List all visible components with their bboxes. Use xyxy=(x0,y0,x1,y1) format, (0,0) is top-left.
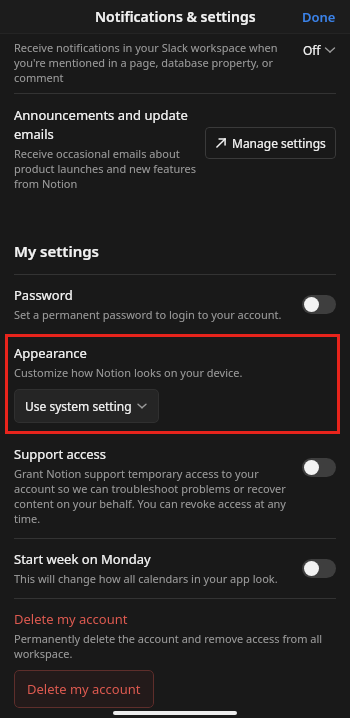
staticText: Announcements and update emails xyxy=(14,106,197,143)
staticText: Delete my account xyxy=(27,680,141,698)
staticText: Password xyxy=(14,286,73,304)
staticText: This will change how all calendars in yo… xyxy=(14,571,278,586)
staticText: Set a permanent password to login to you… xyxy=(14,307,282,322)
button[interactable]: Toggle xyxy=(302,559,336,578)
button[interactable]: Receive notifications in your Slack work… xyxy=(0,34,350,93)
staticText: Grant Notion support temporary access to… xyxy=(14,466,292,526)
staticText: Use system setting xyxy=(25,398,132,414)
staticText: Receive notifications in your Slack work… xyxy=(14,40,293,85)
staticText: Manage settings xyxy=(232,135,326,151)
staticText: Receive occasional emails about product … xyxy=(14,146,197,191)
staticText: Support access xyxy=(14,445,107,463)
staticText: Off xyxy=(303,42,321,58)
button[interactable]: Start week on Monday xyxy=(0,539,350,598)
staticText: Appearance xyxy=(14,344,87,362)
staticText: My settings xyxy=(14,241,100,261)
button[interactable]: Delete my account xyxy=(14,670,154,708)
button[interactable]: Support access xyxy=(0,434,350,538)
staticText: Done xyxy=(302,8,336,26)
button[interactable]: Manage settings xyxy=(205,127,336,159)
staticText: Start week on Monday xyxy=(14,550,151,568)
button[interactable]: Toggle xyxy=(302,458,336,477)
button[interactable]: Done xyxy=(298,4,340,30)
staticText: Delete my account xyxy=(14,610,128,628)
button[interactable]: Announcements and update emails xyxy=(0,94,350,205)
staticText: Permanently delete the account and remov… xyxy=(14,631,336,661)
staticText: Customize how Notion looks on your devic… xyxy=(14,365,243,380)
button[interactable]: Toggle xyxy=(302,295,336,314)
button[interactable]: Password xyxy=(0,275,350,334)
button[interactable]: Use system setting xyxy=(14,389,159,423)
button[interactable]: Appearance xyxy=(5,334,340,434)
staticText: Notifications & settings xyxy=(95,7,256,26)
